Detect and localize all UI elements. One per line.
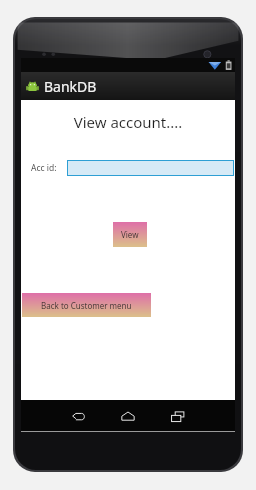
- button[interactable]: View: [113, 222, 147, 247]
- staticText: Acc id:: [31, 162, 57, 174]
- button[interactable]: Back: [65, 403, 91, 429]
- button[interactable]: Recent apps: [165, 403, 191, 429]
- staticText: View: [121, 229, 139, 240]
- button[interactable]: [67, 160, 234, 176]
- button[interactable]: Home: [115, 403, 141, 429]
- staticText: BankDB: [44, 77, 97, 96]
- button[interactable]: Back to Customer menu: [22, 293, 151, 317]
- staticText: View account....: [21, 112, 235, 132]
- staticText: Back to Customer menu: [41, 300, 132, 311]
